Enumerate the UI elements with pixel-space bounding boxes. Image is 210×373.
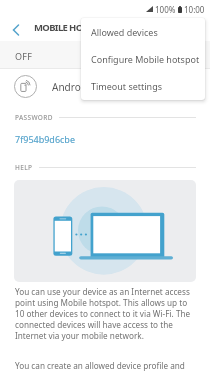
staticText: You can create an allowed device profile… bbox=[15, 360, 195, 373]
staticText: PASSWORD bbox=[15, 113, 53, 122]
staticText: HELP bbox=[15, 163, 33, 172]
button[interactable]: Configure Mobile hotspot bbox=[81, 45, 205, 72]
staticText: AndroidHotspot1234 bbox=[52, 80, 150, 94]
button[interactable]: Allowed devices bbox=[81, 18, 205, 45]
staticText: 10:00 bbox=[184, 4, 205, 15]
button[interactable]: Back bbox=[6, 20, 26, 40]
staticText: 100% bbox=[155, 4, 176, 15]
staticText: Configure Mobile hotspot bbox=[91, 53, 200, 65]
staticText: OFF bbox=[15, 50, 33, 62]
button[interactable]: Timeout settings bbox=[81, 72, 205, 99]
staticText: Allowed devices bbox=[91, 26, 158, 38]
button[interactable]: AndroidHotspot1234 bbox=[0, 69, 210, 104]
staticText: 7f954b9d6cbe bbox=[15, 133, 75, 145]
staticText: MOBILE HOTSPOT bbox=[34, 21, 109, 34]
staticText: Timeout settings bbox=[91, 80, 163, 92]
staticText: You can use your device as an Internet a… bbox=[15, 286, 195, 341]
